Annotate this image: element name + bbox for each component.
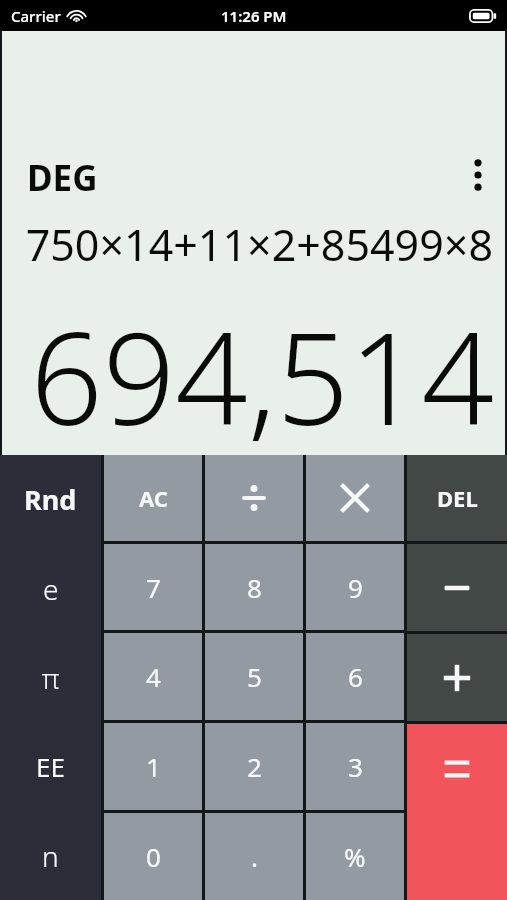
staticText: n — [42, 837, 59, 875]
button[interactable]: π — [0, 633, 101, 722]
button[interactable]: 0 — [104, 813, 202, 900]
button[interactable]: Minus — [407, 544, 507, 631]
button[interactable]: 7 — [104, 544, 202, 630]
button[interactable]: 4 — [104, 633, 202, 720]
button[interactable]: Plus — [407, 634, 507, 721]
staticText: 1 — [146, 749, 161, 784]
button[interactable]: DEG — [24, 151, 101, 205]
staticText: 694,514 — [30, 289, 494, 462]
button[interactable]: e — [0, 544, 101, 633]
staticText: 2 — [247, 749, 262, 784]
button[interactable]: AC — [104, 455, 202, 541]
staticText: 4 — [146, 659, 161, 694]
staticText: AC — [139, 483, 168, 513]
staticText: DEL — [437, 483, 478, 513]
staticText: e — [43, 570, 59, 608]
button[interactable]: DEL — [407, 455, 507, 541]
staticText: Carrier — [11, 6, 61, 26]
button[interactable]: n — [0, 811, 101, 900]
staticText: 9 — [348, 570, 363, 605]
button[interactable]: Multiply — [306, 455, 404, 541]
button[interactable]: Rnd — [0, 455, 101, 544]
staticText: DEG — [27, 154, 98, 202]
button[interactable]: More options — [457, 149, 499, 201]
staticText: 0 — [146, 839, 161, 874]
button[interactable]: 6 — [306, 633, 404, 720]
button[interactable]: Equals — [407, 724, 507, 900]
staticText: % — [344, 839, 366, 874]
button[interactable]: 1 — [104, 723, 202, 810]
staticText: 750×14+11×2+85499×8 — [25, 215, 493, 274]
button[interactable]: % — [306, 813, 404, 900]
button[interactable]: Divide — [205, 455, 303, 541]
staticText: 3 — [348, 749, 363, 784]
staticText: 7 — [146, 570, 161, 605]
button[interactable]: 2 — [205, 723, 303, 810]
button[interactable]: 8 — [205, 544, 303, 630]
staticText: Rnd — [24, 481, 77, 518]
button[interactable]: 3 — [306, 723, 404, 810]
staticText: π — [42, 659, 60, 697]
button[interactable]: 5 — [205, 633, 303, 720]
staticText: 6 — [348, 659, 363, 694]
staticText: 8 — [247, 570, 262, 605]
staticText: 11:26 PM — [221, 6, 287, 26]
staticText: EE — [36, 749, 65, 784]
button[interactable]: 9 — [306, 544, 404, 630]
button[interactable]: EE — [0, 722, 101, 811]
staticText: . — [251, 839, 258, 874]
staticText: 5 — [247, 659, 262, 694]
button[interactable]: . — [205, 813, 303, 900]
